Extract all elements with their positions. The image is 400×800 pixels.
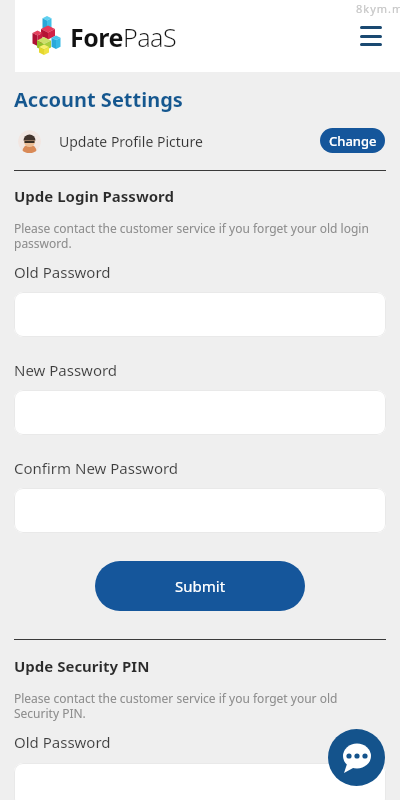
staticText: Please contact the customer service if y… bbox=[14, 220, 369, 251]
staticText: Upde Security PIN bbox=[14, 656, 150, 676]
staticText: Please contact the customer service if y… bbox=[14, 690, 338, 721]
staticText: Change bbox=[329, 132, 377, 150]
button[interactable] bbox=[328, 729, 385, 786]
staticText: ForePaaS bbox=[70, 20, 177, 54]
button[interactable] bbox=[360, 26, 382, 46]
staticText: New Password bbox=[14, 360, 118, 380]
staticText: Confirm New Password bbox=[14, 458, 179, 478]
button[interactable] bbox=[14, 292, 386, 337]
button[interactable] bbox=[14, 488, 386, 533]
staticText: Account Settings bbox=[14, 86, 183, 113]
button[interactable] bbox=[14, 390, 386, 435]
button[interactable]: Change bbox=[320, 128, 385, 153]
button[interactable]: Submit bbox=[95, 561, 305, 611]
staticText: Old Password bbox=[14, 732, 111, 752]
staticText: Upde Login Password bbox=[14, 186, 174, 206]
staticText: Update Profile Picture bbox=[59, 132, 203, 151]
staticText: 8kym.me bbox=[356, 1, 400, 16]
button[interactable] bbox=[14, 763, 386, 800]
staticText: Submit bbox=[175, 576, 226, 596]
staticText: Old Password bbox=[14, 262, 111, 282]
